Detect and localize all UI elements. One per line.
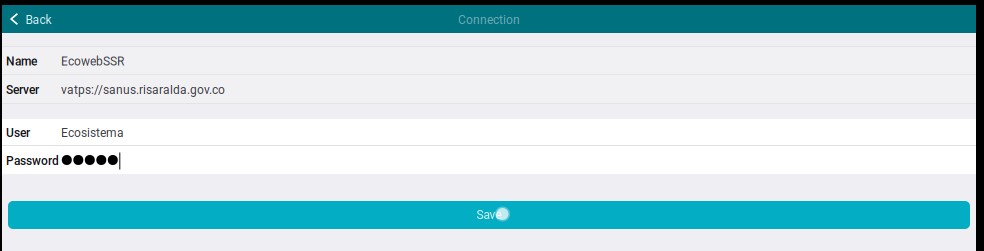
button[interactable]: Back <box>2 5 62 33</box>
staticText: Save <box>476 208 501 222</box>
button[interactable]: Server <box>2 75 976 103</box>
staticText: vatps://sanus.risaralda.gov.co <box>61 83 225 97</box>
staticText: Server <box>6 83 39 97</box>
staticText: Back <box>25 13 51 27</box>
button[interactable]: User <box>2 119 976 145</box>
staticText: User <box>6 126 30 140</box>
staticText: Password <box>6 154 59 168</box>
staticText: Ecosistema <box>61 126 124 140</box>
staticText: Connection <box>458 13 520 27</box>
button[interactable]: Name <box>2 47 976 74</box>
staticText: EcowebSSR <box>61 54 124 69</box>
button[interactable]: Save <box>2 201 976 229</box>
button[interactable]: Password <box>2 146 976 174</box>
staticText: Name <box>6 54 37 69</box>
